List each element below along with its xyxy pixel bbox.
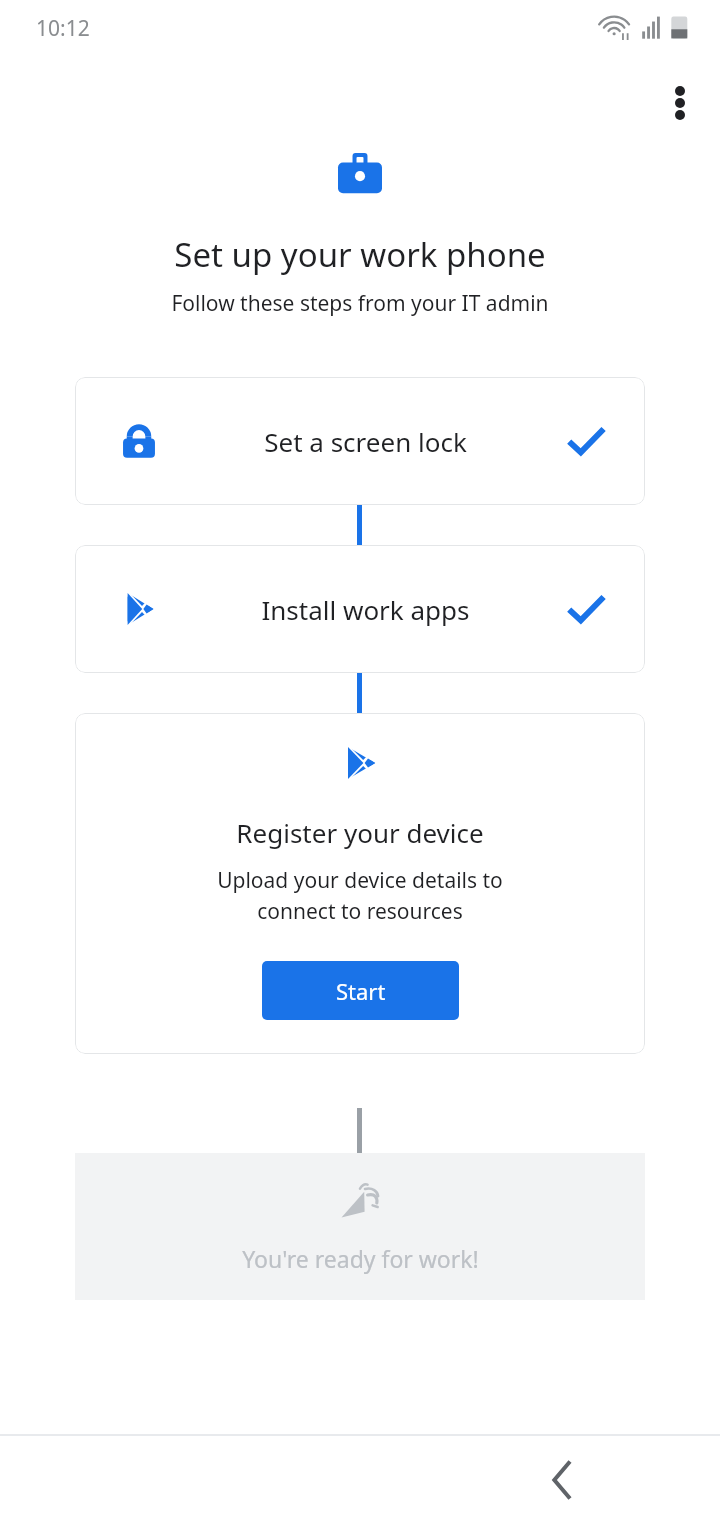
button[interactable]: Back [526,1444,598,1516]
staticText: You're ready for work! [242,1243,479,1274]
button[interactable]: More options [652,75,708,131]
staticText: Upload your device details to connect to… [217,866,503,925]
staticText: Start [336,976,386,1006]
staticText: Set up your work phone [174,232,546,277]
staticText: Register your device [236,815,484,850]
staticText: Follow these steps from your IT admin [171,289,549,318]
button[interactable]: Set a screen lock [75,377,645,505]
staticText: Install work apps [261,592,470,627]
staticText: Set a screen lock [264,424,467,459]
button[interactable]: Start [262,961,459,1020]
staticText: 10:12 [36,14,90,43]
button[interactable]: Install work apps [75,545,645,673]
